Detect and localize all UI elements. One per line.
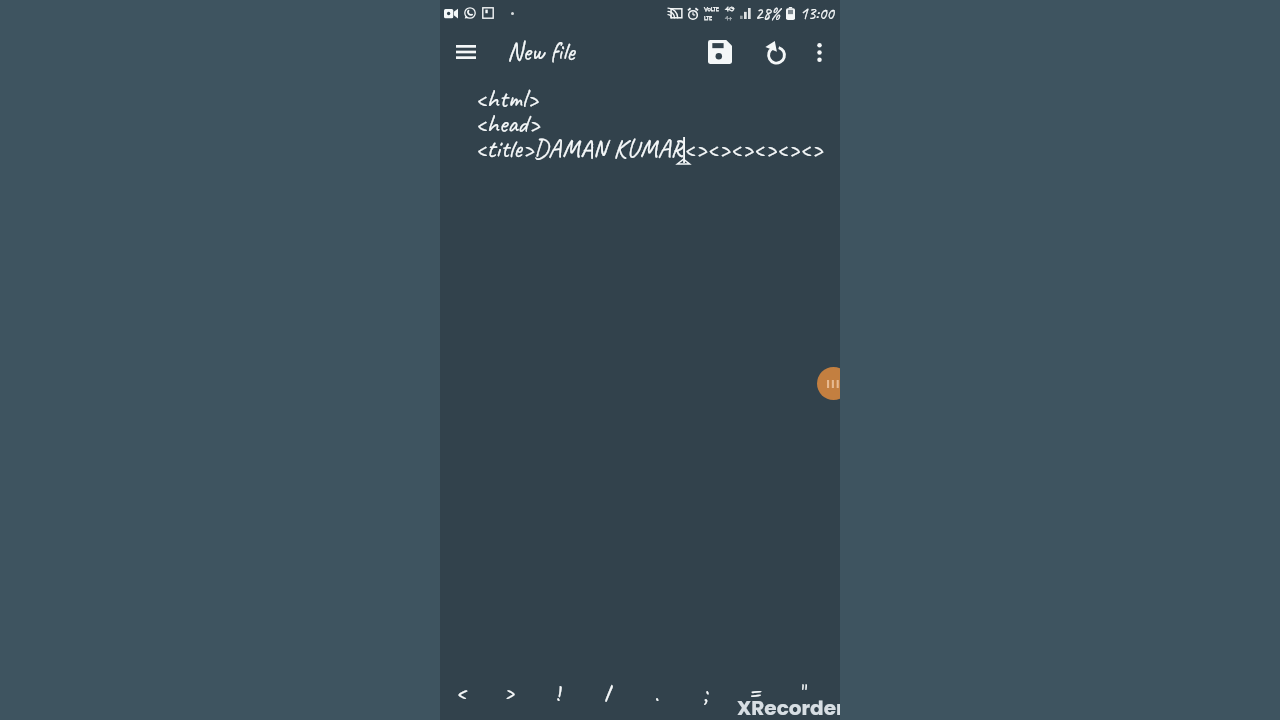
staticText: VoLTE	[704, 5, 720, 14]
staticText: /	[605, 681, 612, 711]
staticText: <	[457, 681, 468, 711]
staticText: New file	[507, 36, 575, 68]
button[interactable]: =	[731, 676, 780, 716]
button[interactable]: Screen recorder	[817, 367, 840, 400]
staticText: .	[655, 681, 660, 711]
button[interactable]: "	[780, 676, 829, 716]
staticText: >	[505, 681, 516, 711]
staticText: ;	[704, 681, 710, 711]
staticText: 4+	[725, 14, 733, 23]
button[interactable]: <	[440, 676, 486, 716]
button[interactable]: Save	[696, 28, 744, 76]
button[interactable]: Navigation menu	[442, 28, 490, 76]
button[interactable]: .	[633, 676, 682, 716]
button[interactable]: More options	[799, 32, 839, 72]
button[interactable]: >	[486, 676, 535, 716]
staticText: 28%	[755, 3, 781, 24]
staticText: 4G	[725, 4, 735, 14]
staticText: XRecorder	[737, 694, 840, 720]
staticText: 13:00	[800, 3, 834, 24]
staticText: LTE	[704, 14, 713, 23]
staticText: <html> <head> <title>DAMAN KUMAR<><><><>…	[475, 82, 823, 165]
button[interactable]: /	[584, 676, 633, 716]
button[interactable]: ;	[682, 676, 731, 716]
button[interactable]: Undo	[751, 28, 799, 76]
staticText: =	[750, 681, 762, 711]
staticText: "	[801, 681, 808, 711]
button[interactable]: !	[535, 676, 584, 716]
staticText: !	[556, 681, 564, 711]
